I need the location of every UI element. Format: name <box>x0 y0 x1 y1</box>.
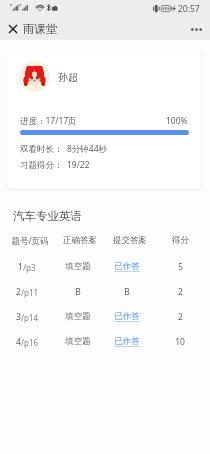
staticText: 孙超 <box>58 71 78 84</box>
staticText: /p16 <box>21 337 39 348</box>
staticText: 2 <box>16 286 21 298</box>
staticText: 汽车专业英语 <box>13 209 82 223</box>
staticText: 4 <box>16 336 21 348</box>
button[interactable]: 2 <box>0 279 210 304</box>
staticText: 习题得分： 19/22 <box>20 159 90 171</box>
staticText: 填空题 <box>65 311 91 322</box>
staticText: 题号/页码 <box>11 235 49 247</box>
button[interactable]: Close <box>2 18 24 40</box>
button[interactable]: 4 <box>0 329 210 354</box>
staticText: 5 <box>178 261 183 273</box>
staticText: 2 <box>178 311 183 323</box>
staticText: 1 <box>18 261 23 273</box>
staticText: 雨课堂 <box>23 22 58 36</box>
staticText: B <box>75 286 81 298</box>
staticText: B <box>124 286 130 298</box>
staticText: 填空题 <box>65 336 91 347</box>
button[interactable]: 已作答 <box>114 261 140 272</box>
staticText: 进度：17/17页 <box>20 115 77 127</box>
button[interactable]: 已作答 <box>114 336 140 347</box>
button[interactable]: 1 <box>0 254 210 279</box>
staticText: 2 <box>178 286 183 298</box>
button[interactable]: 已作答 <box>114 311 140 322</box>
staticText: 填空题 <box>65 261 91 272</box>
button[interactable]: More options <box>184 18 208 40</box>
staticText: 100% <box>166 115 188 127</box>
staticText: 10 <box>175 336 185 348</box>
staticText: 得分 <box>172 235 189 246</box>
staticText: 正确答案 <box>63 235 97 246</box>
staticText: /p3 <box>23 262 36 273</box>
staticText: /p14 <box>21 312 39 323</box>
staticText: 提交答案 <box>113 235 147 246</box>
button[interactable]: 3 <box>0 304 210 329</box>
staticText: 双看时长： 8分钟44秒 <box>20 143 108 155</box>
staticText: 3 <box>16 311 21 323</box>
staticText: 20:57 <box>178 3 200 15</box>
staticText: /p11 <box>21 287 39 298</box>
